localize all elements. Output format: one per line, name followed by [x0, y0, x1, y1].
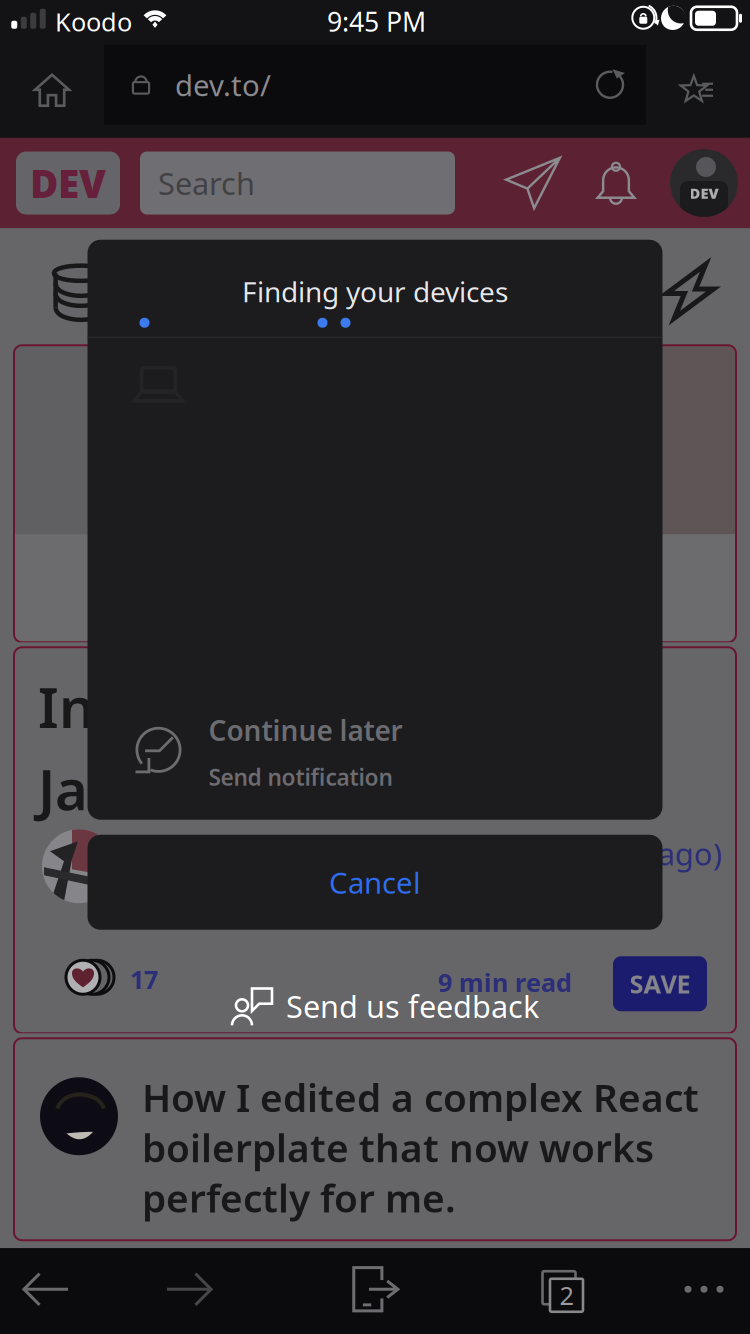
button[interactable]: Cancel	[87, 835, 662, 930]
button[interactable]: Share	[330, 1248, 422, 1330]
staticText: 9:45 PM	[327, 4, 426, 39]
staticText: Ja	[38, 751, 88, 826]
staticText: How I edited a complex React	[142, 1071, 699, 1122]
button[interactable]: DEV Home	[0, 151, 140, 214]
staticText: Finding your devices	[242, 273, 508, 310]
button[interactable]: Search	[140, 151, 455, 214]
staticText: perfectly for me.	[142, 1172, 456, 1223]
staticText: dev.to/	[175, 65, 271, 104]
staticText: Cancel	[329, 863, 421, 902]
button[interactable]: SAVE	[613, 956, 707, 1011]
button[interactable]: Back	[0, 1248, 92, 1330]
staticText: DEV	[30, 157, 106, 209]
staticText: Send notification	[208, 762, 392, 792]
button[interactable]: More options	[658, 1248, 750, 1330]
staticText: SAVE	[629, 967, 690, 1000]
button[interactable]: Notifications	[588, 151, 644, 215]
staticText: boilerplate that now works	[142, 1122, 654, 1173]
staticText: Send us feedback	[286, 986, 539, 1026]
button[interactable]: Home	[0, 42, 104, 138]
button[interactable]: Reload	[574, 45, 646, 125]
staticText: 9 min read	[438, 965, 572, 999]
button[interactable]: Forward	[143, 1248, 235, 1330]
button[interactable]: Send us feedback	[232, 986, 539, 1026]
staticText: In	[38, 669, 95, 744]
button[interactable]: Tabs	[513, 1248, 605, 1327]
staticText: 17	[130, 962, 158, 996]
staticText: DEV	[689, 183, 718, 203]
staticText: Koodo	[55, 5, 132, 38]
button[interactable]: Bookmarks	[646, 42, 750, 138]
button[interactable]: Create Post	[502, 151, 564, 215]
staticText: 2	[559, 1278, 573, 1312]
staticText: ago)	[658, 833, 722, 874]
staticText: Search	[158, 163, 255, 203]
button[interactable]: Profile	[644, 149, 750, 217]
button[interactable]: Continue later	[87, 687, 662, 817]
staticText: Continue later	[208, 712, 402, 749]
